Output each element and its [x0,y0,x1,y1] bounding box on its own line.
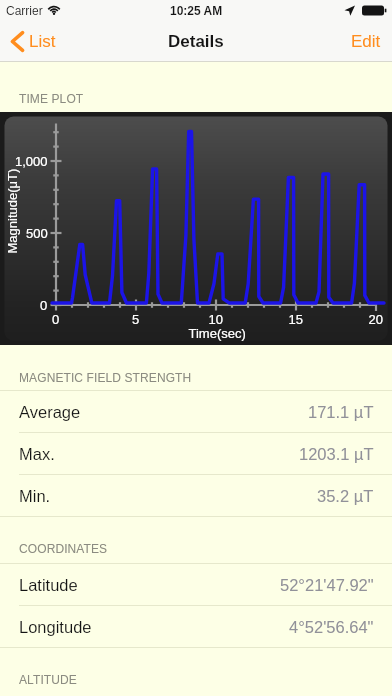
staticText: 10:25 AM [170,4,223,17]
button[interactable]: Min. [0,475,392,516]
staticText: Longitude [19,618,92,636]
staticText: Max. [19,445,55,463]
staticText: MAGNETIC FIELD STRENGTH [19,371,192,384]
staticText: 4°52'56.64" [289,618,374,636]
staticText: Average [19,403,81,421]
staticText: Carrier [6,4,43,17]
staticText: COORDINATES [19,542,108,555]
button[interactable]: Edit [340,25,392,58]
button[interactable]: Longitude [0,606,392,647]
staticText: 171.1 µT [308,403,374,421]
staticText: List [29,32,56,51]
button[interactable]: Average [0,391,392,432]
staticText: 35.2 µT [317,487,374,505]
staticText: Min. [19,487,51,505]
staticText: Edit [351,32,381,51]
button[interactable]: Max. [0,433,392,474]
staticText: ALTITUDE [19,673,77,686]
staticText: TIME PLOT [19,92,84,105]
button[interactable]: List [0,26,66,57]
staticText: Latitude [19,576,78,594]
staticText: Details [168,32,224,51]
staticText: 1203.1 µT [299,445,374,463]
button[interactable]: Latitude [0,564,392,605]
staticText: 52°21'47.92" [280,576,374,594]
